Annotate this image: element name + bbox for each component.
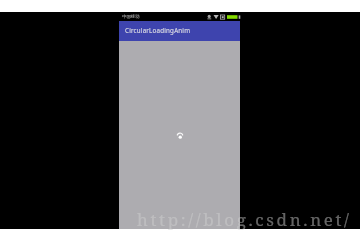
staticText: 中国移动 xyxy=(122,14,140,20)
staticText: http://blog.csdn.net/ xyxy=(137,208,352,231)
staticText: CircularLoadingAnim xyxy=(125,26,191,34)
button[interactable]: Status icons xyxy=(207,13,240,21)
button[interactable]: Loading xyxy=(176,132,184,140)
button[interactable]: CircularLoadingAnim xyxy=(119,21,240,41)
